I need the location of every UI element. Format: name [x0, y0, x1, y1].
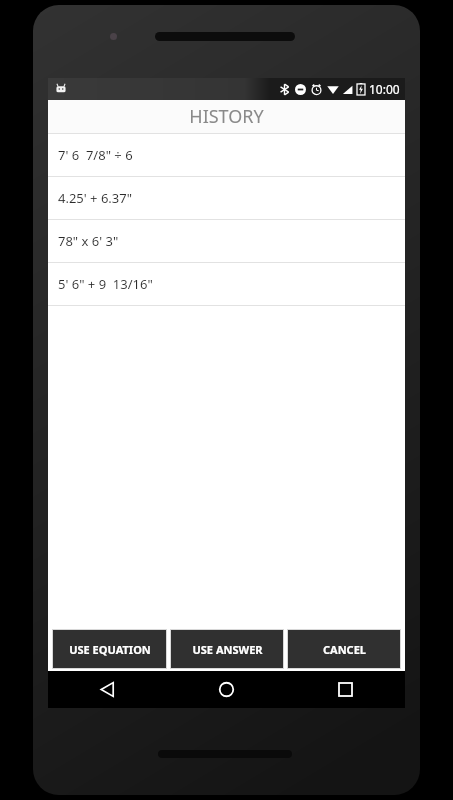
button[interactable]: USE ANSWER: [170, 629, 284, 669]
button[interactable]: CANCEL: [287, 629, 401, 669]
button[interactable]: 7' 6 7/8" ÷ 6: [48, 134, 405, 177]
staticText: CANCEL: [323, 642, 366, 657]
staticText: 10:00: [369, 81, 400, 97]
staticText: USE ANSWER: [192, 642, 263, 657]
button[interactable]: USE EQUATION: [52, 629, 167, 669]
staticText: 78" x 6' 3": [58, 232, 119, 250]
button[interactable]: Home: [167, 671, 286, 708]
button[interactable]: Back: [48, 671, 167, 708]
staticText: HISTORY: [189, 104, 264, 129]
button[interactable]: 78" x 6' 3": [48, 220, 405, 263]
staticText: USE EQUATION: [69, 642, 151, 657]
staticText: 7' 6 7/8" ÷ 6: [58, 146, 133, 164]
button[interactable]: 4.25' + 6.37": [48, 177, 405, 220]
staticText: 5' 6" + 9 13/16": [58, 275, 153, 293]
button[interactable]: 5' 6" + 9 13/16": [48, 263, 405, 306]
button[interactable]: Recent apps: [286, 671, 405, 708]
staticText: 4.25' + 6.37": [58, 189, 133, 207]
